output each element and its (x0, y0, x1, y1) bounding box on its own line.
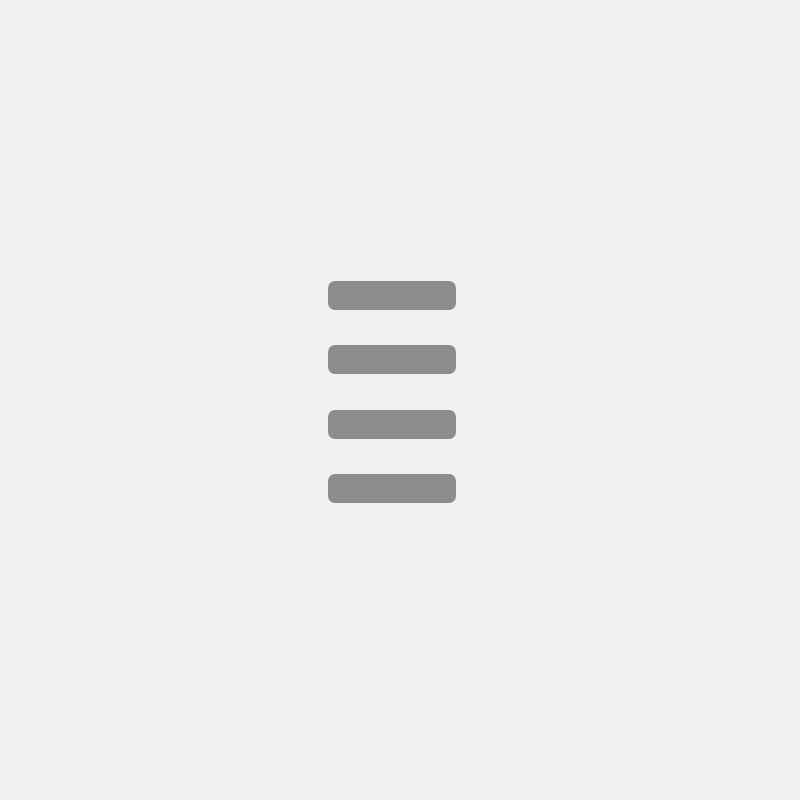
button[interactable]: Placeholder item one (328, 281, 456, 310)
button[interactable]: Placeholder item two (328, 345, 456, 374)
button[interactable]: Placeholder item four (328, 474, 456, 503)
button[interactable]: Placeholder item three (328, 410, 456, 439)
